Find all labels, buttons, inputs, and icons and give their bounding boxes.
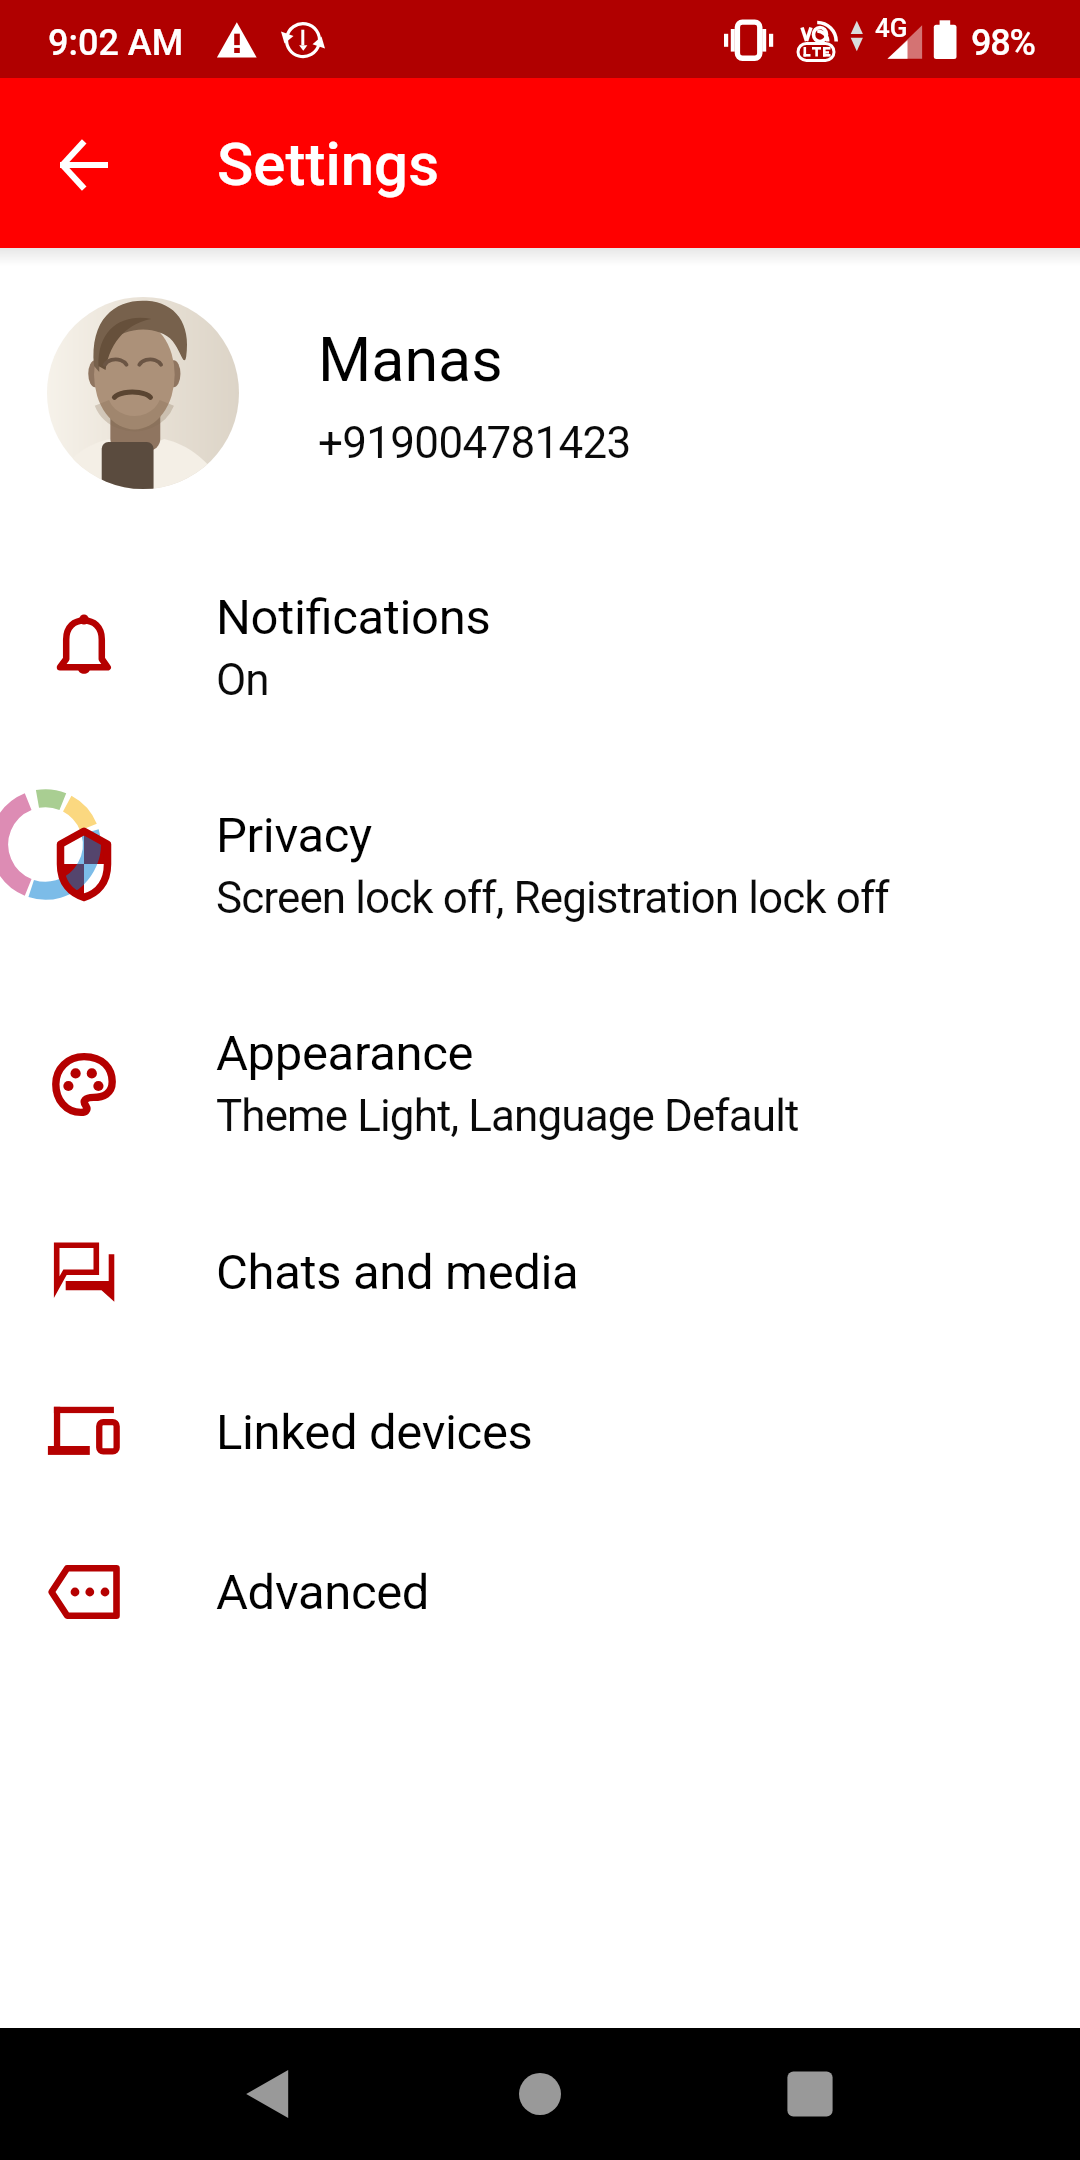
staticText: 98% xyxy=(971,22,1035,64)
button[interactable]: Linked devices xyxy=(0,1352,1080,1512)
staticText: Advanced xyxy=(216,1564,430,1621)
staticText: Settings xyxy=(217,129,440,199)
button[interactable]: Privacy xyxy=(0,756,1080,974)
staticText: 4G xyxy=(875,13,908,43)
staticText: Appearance xyxy=(216,1025,474,1082)
staticText: Notifications xyxy=(216,589,491,646)
staticText: 9:02 AM xyxy=(48,22,184,64)
staticText: Theme Light, Language Default xyxy=(216,1090,799,1142)
button[interactable]: Navigate up xyxy=(30,111,138,219)
staticText: Screen lock off, Registration lock off xyxy=(216,872,889,924)
button[interactable]: Notifications xyxy=(0,538,1080,756)
staticText: Linked devices xyxy=(216,1404,533,1461)
button[interactable]: Chats and media xyxy=(0,1192,1080,1352)
button[interactable]: Advanced xyxy=(0,1512,1080,1672)
staticText: Privacy xyxy=(216,807,372,864)
button[interactable]: Appearance xyxy=(0,974,1080,1192)
staticText: +919004781423 xyxy=(318,417,631,469)
staticText: Chats and media xyxy=(216,1244,579,1301)
button[interactable]: Back xyxy=(207,2034,327,2154)
button[interactable]: Manas xyxy=(0,290,1080,502)
staticText: Manas xyxy=(318,324,503,395)
staticText: On xyxy=(216,654,269,706)
button[interactable]: Home xyxy=(480,2034,600,2154)
button[interactable]: Recent apps xyxy=(750,2034,870,2154)
